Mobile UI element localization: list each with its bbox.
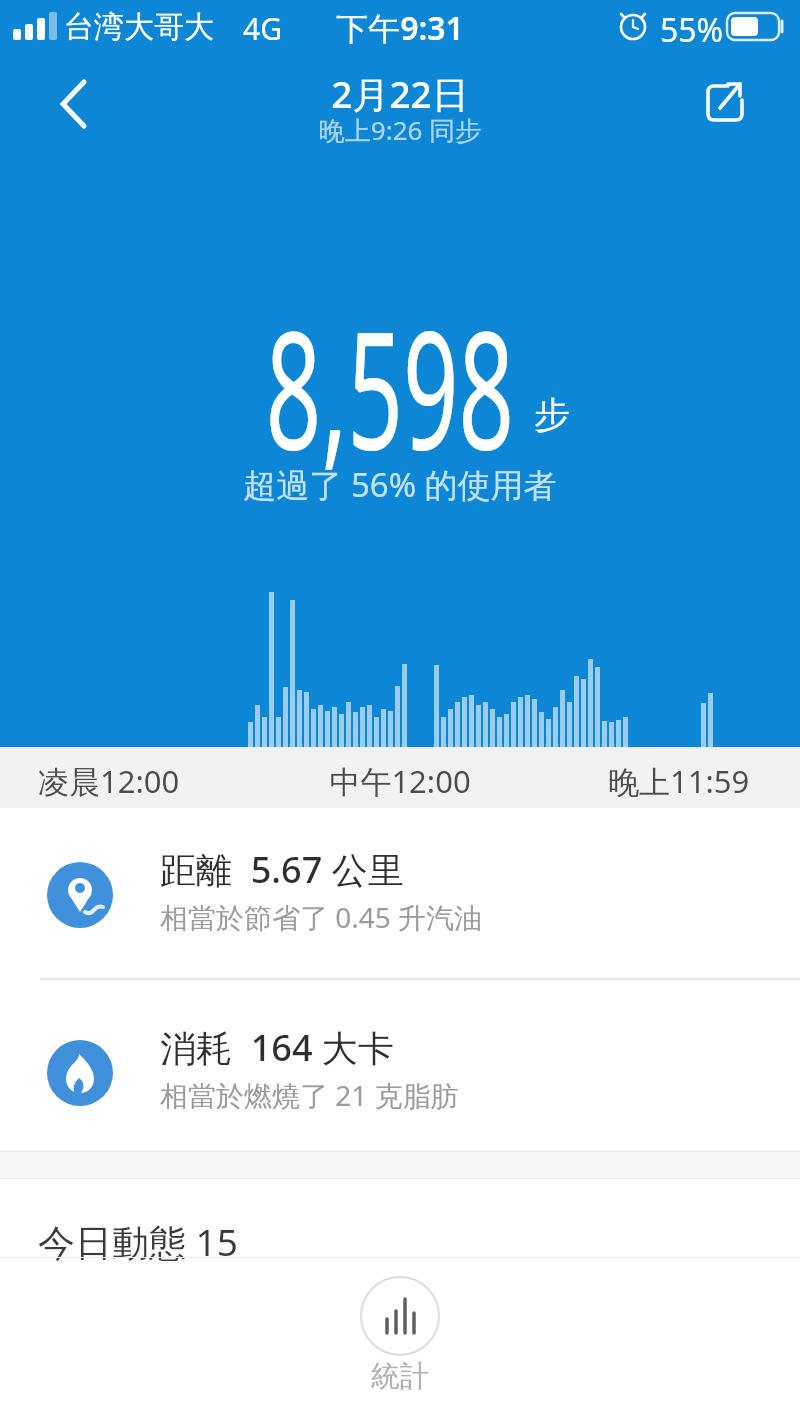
staticText: 55%: [660, 8, 724, 52]
staticText: 晚上9:26 同步: [0, 112, 800, 148]
staticText: 超過了 56% 的使用者: [0, 462, 800, 507]
button[interactable]: [330, 1262, 470, 1412]
staticText: 凌晨12:00: [38, 760, 180, 802]
staticText: 台湾大哥大: [64, 8, 214, 46]
staticText: 晚上11:59: [608, 760, 750, 802]
staticText: 相當於節省了 0.45 升汽油: [160, 898, 483, 936]
staticText: 8,598: [150, 276, 630, 497]
staticText: 2月22日: [0, 68, 800, 119]
staticText: 中午12:00: [0, 760, 800, 802]
staticText: 消耗 164 大卡: [160, 1023, 394, 1072]
button[interactable]: [40, 70, 110, 140]
button[interactable]: [690, 70, 760, 140]
staticText: 下午9:31: [0, 6, 800, 50]
staticText: 步: [534, 392, 570, 437]
button[interactable]: [0, 1005, 800, 1155]
staticText: 距離 5.67 公里: [160, 845, 404, 894]
staticText: 統計: [0, 1358, 800, 1395]
staticText: 相當於燃燒了 21 克脂肪: [160, 1076, 459, 1114]
button[interactable]: [0, 828, 800, 978]
staticText: 4G: [243, 8, 282, 49]
staticText: 今日動態 15: [38, 1216, 238, 1267]
